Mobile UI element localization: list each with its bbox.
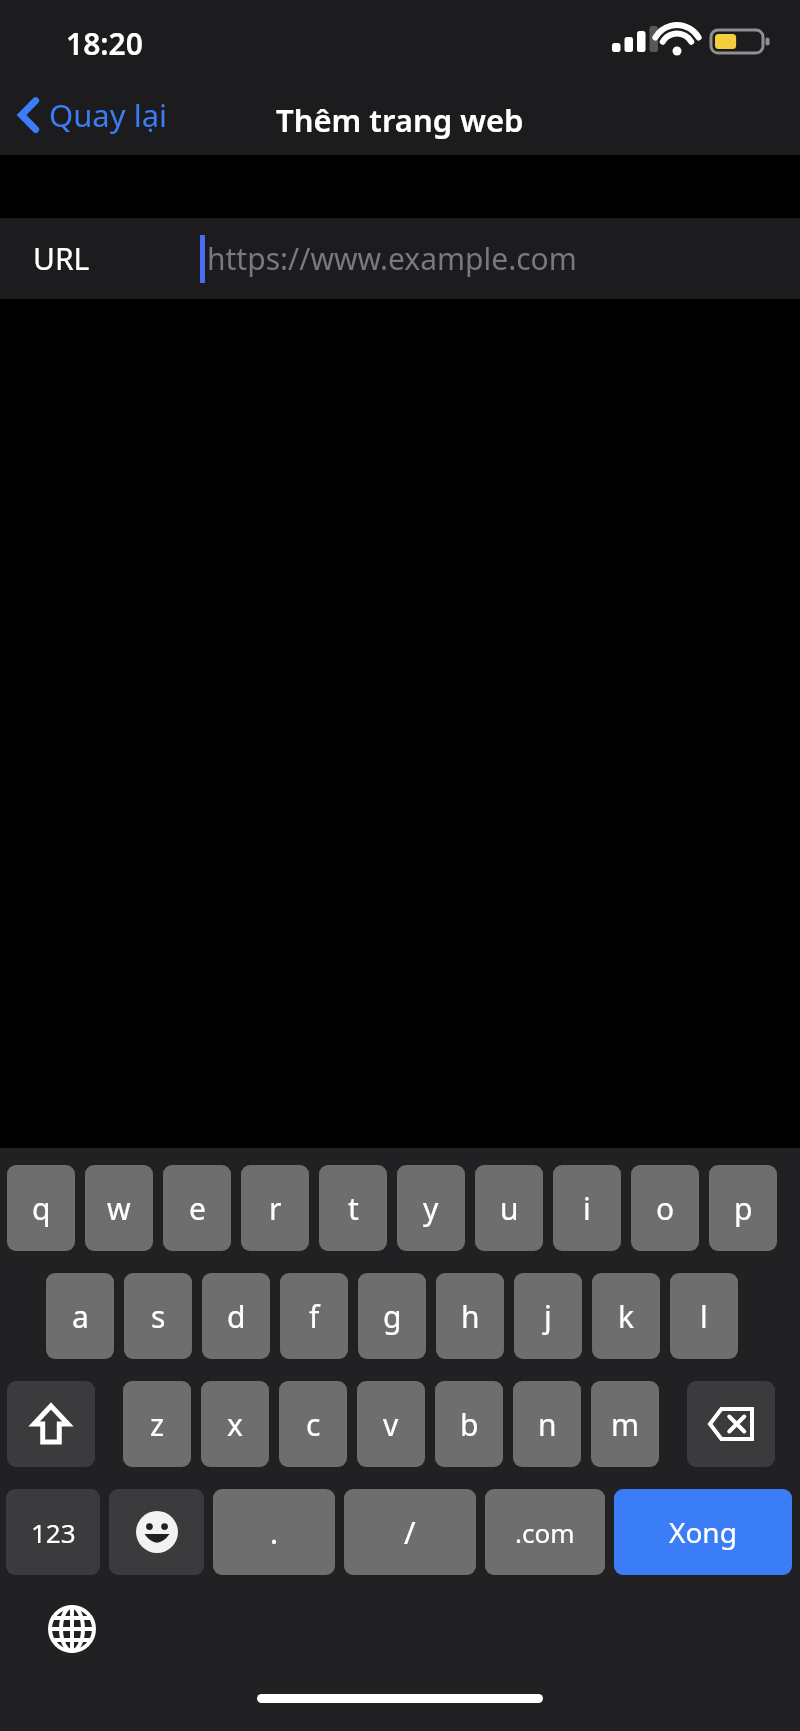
staticText: p: [734, 1188, 753, 1229]
staticText: f: [309, 1296, 320, 1337]
button[interactable]: k: [592, 1273, 660, 1359]
staticText: 18:20: [66, 23, 143, 64]
staticText: .: [270, 1512, 279, 1553]
staticText: y: [423, 1188, 439, 1229]
button[interactable]: b: [435, 1381, 503, 1467]
staticText: a: [72, 1296, 89, 1337]
staticText: Quay lại: [49, 94, 168, 136]
button[interactable]: f: [280, 1273, 348, 1359]
button[interactable]: x: [201, 1381, 269, 1467]
button[interactable]: m: [591, 1381, 659, 1467]
button[interactable]: i: [553, 1165, 621, 1251]
button[interactable]: u: [475, 1165, 543, 1251]
button[interactable]: s: [124, 1273, 192, 1359]
button[interactable]: a: [46, 1273, 114, 1359]
button[interactable]: n: [513, 1381, 581, 1467]
button[interactable]: .com: [485, 1489, 605, 1575]
button[interactable]: c: [279, 1381, 347, 1467]
staticText: .com: [515, 1515, 575, 1550]
button[interactable]: l: [670, 1273, 738, 1359]
staticText: https://www.example.com: [207, 238, 577, 279]
button[interactable]: Xong: [614, 1489, 792, 1575]
staticText: h: [461, 1296, 480, 1337]
button[interactable]: e: [163, 1165, 231, 1251]
button[interactable]: r: [241, 1165, 309, 1251]
button[interactable]: /: [344, 1489, 476, 1575]
staticText: q: [32, 1188, 51, 1229]
button[interactable]: .: [213, 1489, 335, 1575]
button[interactable]: t: [319, 1165, 387, 1251]
button[interactable]: w: [85, 1165, 153, 1251]
button[interactable]: j: [514, 1273, 582, 1359]
button[interactable]: d: [202, 1273, 270, 1359]
staticText: j: [544, 1296, 552, 1337]
staticText: g: [383, 1296, 402, 1337]
button[interactable]: q: [7, 1165, 75, 1251]
staticText: k: [618, 1296, 635, 1337]
staticText: l: [700, 1296, 708, 1337]
button[interactable]: Quay lại: [12, 86, 174, 144]
staticText: /: [404, 1511, 416, 1553]
button[interactable]: p: [709, 1165, 777, 1251]
button[interactable]: 123: [6, 1489, 100, 1575]
staticText: x: [227, 1404, 243, 1445]
staticText: d: [227, 1296, 246, 1337]
staticText: u: [500, 1188, 519, 1229]
staticText: t: [348, 1188, 359, 1229]
button[interactable]: y: [397, 1165, 465, 1251]
button[interactable]: o: [631, 1165, 699, 1251]
staticText: 123: [31, 1515, 76, 1550]
staticText: m: [611, 1404, 640, 1445]
staticText: i: [583, 1188, 591, 1229]
staticText: URL: [33, 238, 90, 279]
staticText: v: [383, 1404, 399, 1445]
staticText: o: [656, 1188, 675, 1229]
button[interactable]: Change keyboard: [40, 1597, 104, 1661]
button[interactable]: Backspace: [687, 1381, 775, 1467]
button[interactable]: Shift: [7, 1381, 95, 1467]
staticText: r: [269, 1188, 282, 1229]
staticText: n: [538, 1404, 557, 1445]
staticText: b: [460, 1404, 479, 1445]
button[interactable]: z: [123, 1381, 191, 1467]
staticText: Xong: [669, 1513, 737, 1551]
button[interactable]: URL: [0, 218, 800, 299]
button[interactable]: g: [358, 1273, 426, 1359]
button[interactable]: h: [436, 1273, 504, 1359]
staticText: c: [306, 1404, 321, 1445]
staticText: w: [107, 1188, 131, 1229]
staticText: e: [189, 1188, 206, 1229]
staticText: s: [151, 1296, 166, 1337]
staticText: z: [150, 1404, 165, 1445]
button[interactable]: Emoji: [109, 1489, 204, 1575]
staticText: Thêm trang web: [276, 99, 524, 141]
button[interactable]: v: [357, 1381, 425, 1467]
